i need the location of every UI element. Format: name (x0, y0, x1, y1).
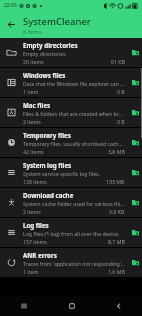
staticText: 133 MB (106, 178, 125, 185)
button[interactable]: Back (0, 11, 23, 38)
staticText: System log files (23, 161, 72, 169)
staticText: 8,7 MB (108, 238, 125, 245)
staticText: 1 item (23, 88, 39, 95)
staticText: 22:56 (4, 2, 17, 9)
staticText: 61 KB (111, 58, 125, 65)
button[interactable]: Open folder (128, 248, 142, 277)
staticText: 2 items (23, 208, 41, 215)
staticText: 128 items (23, 178, 47, 185)
button[interactable]: Windows files (0, 68, 142, 97)
staticText: System cache folder used for various thi… (23, 200, 125, 207)
button[interactable]: Back (95, 296, 142, 316)
button[interactable]: Recents (0, 296, 48, 316)
button[interactable]: Open folder (128, 218, 142, 247)
button[interactable]: Open folder (128, 38, 142, 67)
staticText: 157 items (23, 238, 47, 245)
button[interactable]: Open folder (128, 98, 142, 127)
staticText: Empty directories (23, 41, 78, 49)
button[interactable]: ANR errors (0, 248, 142, 277)
staticText: Data that the Windows file explorer can … (23, 80, 125, 87)
button[interactable]: Empty directories (0, 38, 142, 67)
button[interactable]: Home (48, 296, 95, 316)
staticText: Mac files (23, 101, 51, 109)
staticText: Log files (*.log) from all over the devi… (23, 230, 120, 237)
button[interactable]: Log files (0, 218, 142, 247)
staticText: 1,6 MB (108, 268, 125, 275)
staticText: Temporary files (23, 131, 71, 139)
staticText: 2 items (23, 118, 41, 125)
button[interactable]: Temporary files (0, 128, 142, 157)
button[interactable]: Open folder (128, 68, 142, 97)
staticText: ANR errors (23, 251, 57, 259)
staticText: Log files (23, 221, 49, 229)
button[interactable]: Open folder (128, 188, 142, 217)
staticText: 42 items (23, 148, 44, 155)
staticText: Temporary files, usually shortlived cach… (23, 140, 125, 147)
staticText: 1 item (23, 268, 39, 275)
staticText: Download cache (23, 191, 74, 199)
button[interactable]: Open folder (128, 158, 142, 187)
staticText: Windows files (23, 71, 66, 79)
staticText: Empty directories (23, 50, 66, 57)
button[interactable]: System log files (0, 158, 142, 187)
staticText: Files & folders that are created when br… (23, 110, 125, 117)
button[interactable]: Download cache (0, 188, 142, 217)
staticText: 5,9 KB (109, 208, 125, 215)
staticText: 20 items (23, 58, 44, 65)
staticText: 0 B (117, 118, 125, 125)
staticText: Traces from 'application not responding'… (23, 260, 125, 267)
button[interactable]: Mac files (0, 98, 142, 127)
staticText: SystemCleaner (23, 15, 91, 28)
button[interactable]: Open folder (128, 128, 142, 157)
staticText: System service specific log files. (23, 170, 100, 177)
staticText: 8 items (23, 28, 42, 35)
staticText: 0 B (117, 88, 125, 95)
staticText: 3,8 MB (108, 148, 125, 155)
